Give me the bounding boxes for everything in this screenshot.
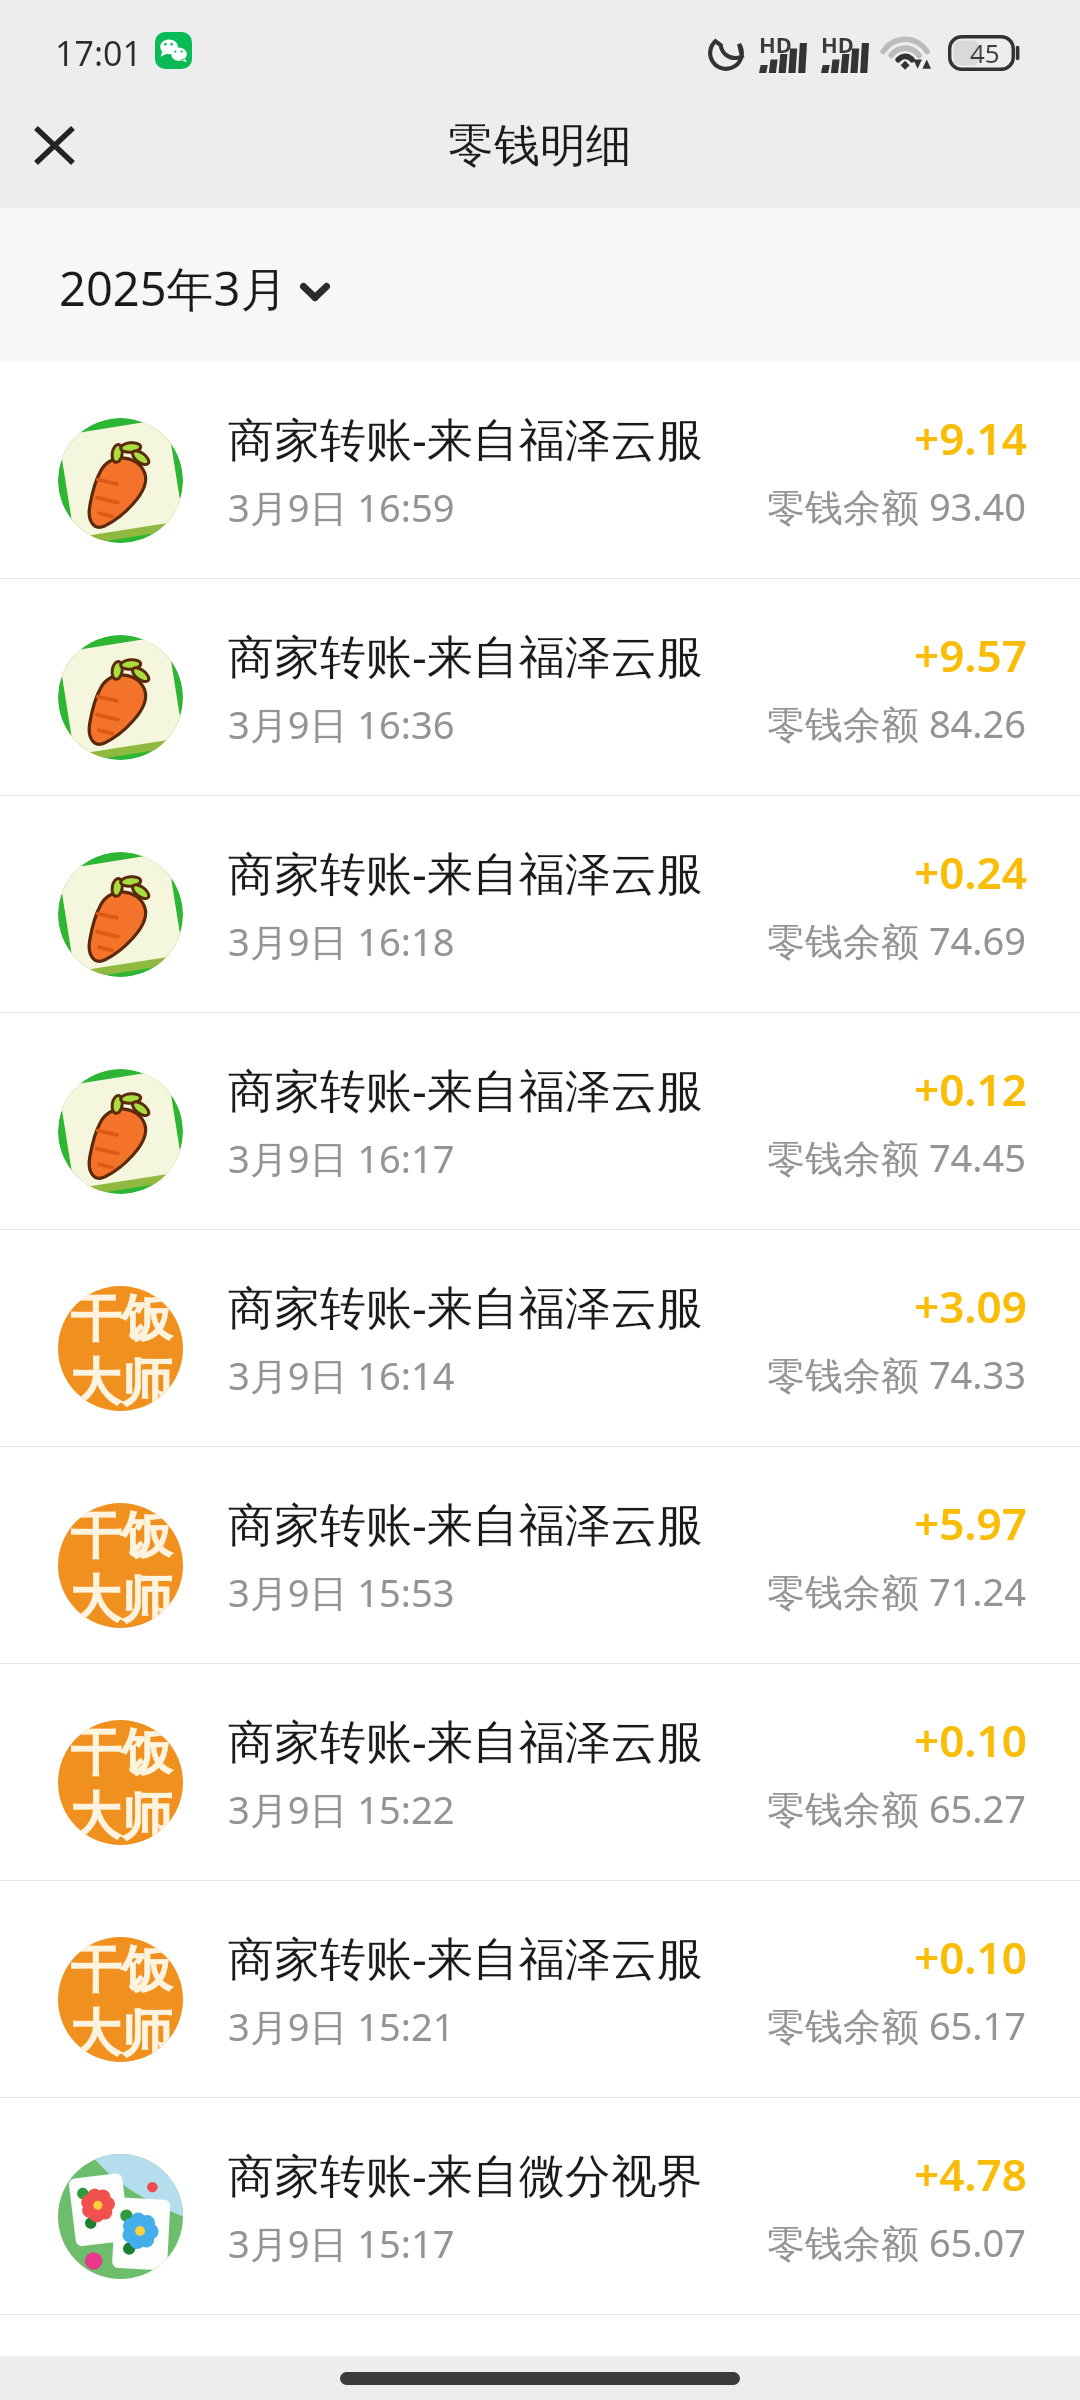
staticText: 商家转账-来自福泽云服: [228, 1275, 703, 1338]
staticText: 大师: [70, 1785, 172, 1845]
staticText: 商家转账-来自福泽云服: [228, 1709, 703, 1772]
staticText: 零钱余额 74.33: [767, 1348, 1027, 1400]
staticText: 零钱余额 65.07: [767, 2216, 1027, 2268]
staticText: 零钱余额 74.69: [767, 914, 1027, 966]
button[interactable]: 干饭: [0, 1230, 1080, 1446]
button[interactable]: 干饭: [0, 1447, 1080, 1663]
staticText: 零钱余额 71.24: [767, 1565, 1027, 1617]
staticText: 零钱余额 74.45: [767, 1131, 1027, 1183]
staticText: +9.57: [914, 625, 1027, 685]
staticText: 零钱余额 65.17: [767, 1999, 1027, 2051]
button[interactable]: 商家转账-来自福泽云服: [0, 796, 1080, 1012]
staticText: 干饭: [70, 1287, 172, 1351]
staticText: 商家转账-来自福泽云服: [228, 624, 703, 687]
staticText: 零钱余额 84.26: [767, 697, 1027, 749]
staticText: HD: [821, 29, 854, 59]
staticText: HD: [759, 29, 792, 59]
staticText: 零钱明细: [448, 117, 632, 175]
staticText: 商家转账-来自福泽云服: [228, 1492, 703, 1555]
staticText: 商家转账-来自福泽云服: [228, 1058, 703, 1121]
staticText: 干饭: [70, 1504, 172, 1568]
staticText: +0.10: [914, 1927, 1027, 1987]
staticText: 干饭: [70, 1721, 172, 1785]
staticText: 大师: [70, 2002, 172, 2062]
button[interactable]: 干饭: [0, 1881, 1080, 2097]
staticText: 3月9日 16:14: [228, 1349, 455, 1401]
staticText: 零钱余额 93.40: [767, 480, 1027, 532]
staticText: 大师: [70, 1568, 172, 1628]
staticText: 3月9日 15:22: [228, 1783, 455, 1835]
staticText: 干饭: [70, 1938, 172, 2002]
staticText: +0.10: [914, 1710, 1027, 1770]
staticText: 3月9日 16:17: [228, 1132, 455, 1184]
button[interactable]: 2025年3月: [35, 240, 354, 336]
staticText: 3月9日 15:21: [228, 2000, 455, 2052]
button[interactable]: 干饭: [0, 1664, 1080, 1880]
staticText: +0.24: [914, 842, 1027, 902]
staticText: 3月9日 16:59: [228, 481, 455, 533]
staticText: 商家转账-来自微分视界: [228, 2143, 703, 2206]
staticText: +5.97: [914, 1493, 1027, 1553]
staticText: +3.09: [914, 1276, 1027, 1336]
staticText: +0.12: [914, 1059, 1027, 1119]
staticText: 45: [970, 35, 1000, 70]
staticText: 零钱余额 65.27: [767, 1782, 1027, 1834]
staticText: 3月9日 15:53: [228, 1566, 455, 1618]
button[interactable]: 商家转账-来自福泽云服: [0, 1013, 1080, 1229]
staticText: 商家转账-来自福泽云服: [228, 841, 703, 904]
button[interactable]: 商家转账-来自福泽云服: [0, 579, 1080, 795]
button[interactable]: Close: [0, 108, 108, 208]
staticText: 商家转账-来自福泽云服: [228, 1926, 703, 1989]
staticText: 17:01: [55, 30, 142, 76]
button[interactable]: 商家转账-来自微分视界: [0, 2098, 1080, 2314]
staticText: +4.78: [914, 2144, 1027, 2204]
staticText: +9.14: [914, 408, 1027, 468]
staticText: 3月9日 16:18: [228, 915, 455, 967]
staticText: 3月9日 16:36: [228, 698, 455, 750]
staticText: 大师: [70, 1351, 172, 1411]
staticText: 商家转账-来自福泽云服: [228, 407, 703, 470]
button[interactable]: 商家转账-来自福泽云服: [0, 362, 1080, 578]
staticText: 3月9日 15:17: [228, 2217, 455, 2269]
staticText: 2025年3月: [59, 256, 288, 320]
